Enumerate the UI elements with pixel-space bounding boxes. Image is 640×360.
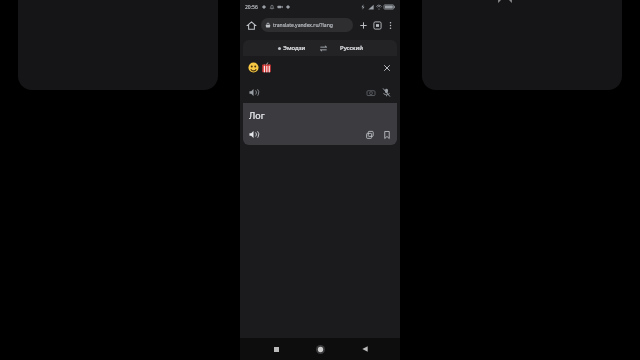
button[interactable]: translate.yandex.ru/?lang: [261, 18, 353, 32]
button[interactable]: Русский: [337, 43, 366, 53]
button[interactable]: Лог: [243, 103, 397, 145]
button[interactable]: Copy: [363, 128, 376, 141]
button[interactable]: Эмодзи: [275, 43, 309, 53]
button[interactable]: Clear text: [380, 61, 393, 74]
button[interactable]: New tab: [356, 18, 370, 32]
button[interactable]: Save: [492, 0, 518, 4]
button[interactable]: Home: [244, 18, 258, 32]
button[interactable]: Listen: [247, 86, 260, 99]
button[interactable]: Back: [356, 340, 374, 358]
button[interactable]: Voice input off: [380, 86, 393, 99]
button[interactable]: Home: [311, 340, 329, 358]
button[interactable]: Camera input: [364, 86, 377, 99]
staticText: Русский: [340, 44, 363, 52]
button[interactable]: Bookmark: [380, 128, 393, 141]
staticText: Лог: [249, 109, 265, 121]
button[interactable]: More options: [384, 19, 396, 31]
staticText: translate.yandex.ru/?lang: [273, 22, 333, 29]
staticText: 20:56: [245, 4, 258, 11]
button[interactable]: Swap languages: [317, 42, 329, 54]
button[interactable]: Listen to translation: [247, 128, 260, 141]
button[interactable]: Clear text: [243, 56, 397, 103]
button[interactable]: Recent apps: [267, 340, 285, 358]
staticText: Эмодзи: [283, 44, 306, 52]
button[interactable]: Tabs: [370, 18, 384, 32]
